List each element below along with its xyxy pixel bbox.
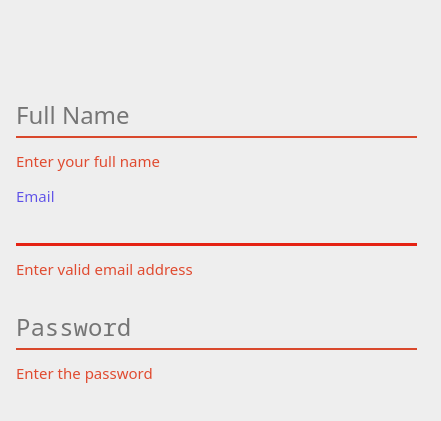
staticText: Full Name <box>16 98 130 131</box>
button[interactable]: Email <box>16 186 417 246</box>
staticText: Enter the password <box>16 363 153 383</box>
staticText: Email <box>16 186 55 206</box>
button[interactable]: Password <box>16 310 417 350</box>
staticText: Password <box>16 310 132 343</box>
staticText: Enter valid email address <box>16 259 193 279</box>
button[interactable]: Full Name <box>16 98 417 138</box>
staticText: Enter your full name <box>16 151 160 171</box>
